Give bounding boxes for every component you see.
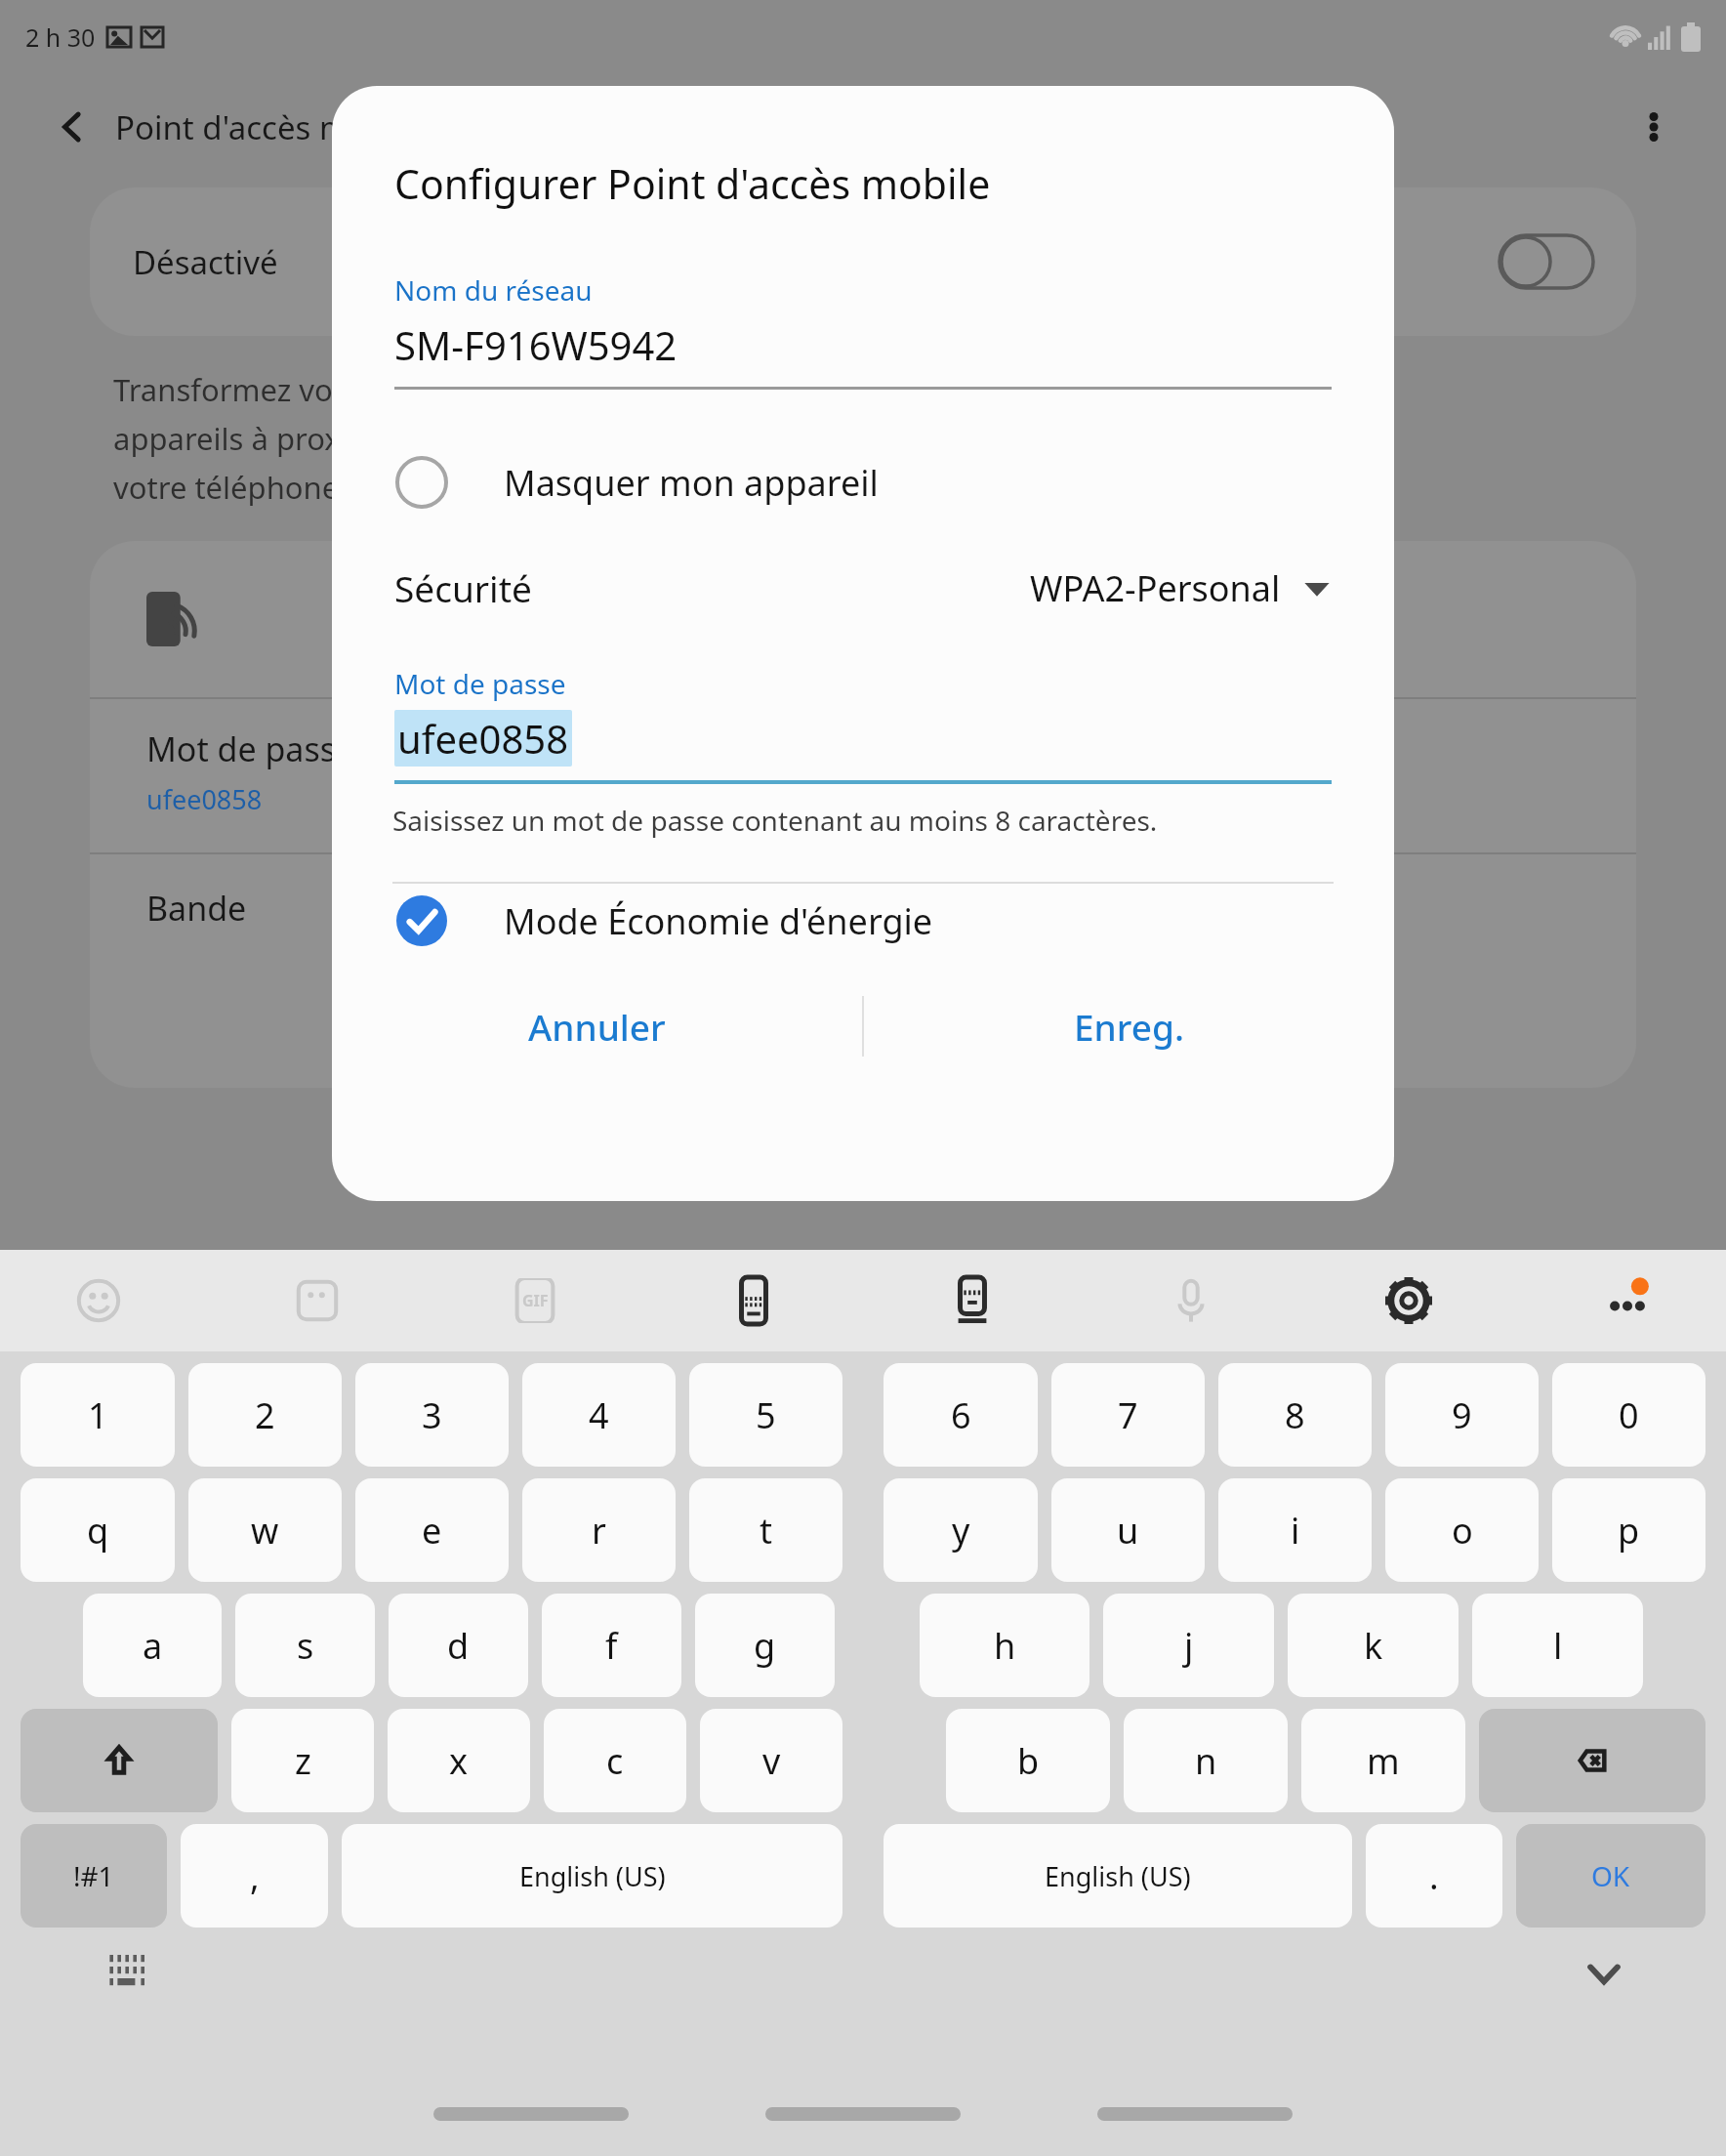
button[interactable]: Désactivé [90,187,1636,336]
button[interactable]: 7 [1051,1363,1205,1467]
button[interactable]: Mode Économie d'énergie [394,884,1332,958]
staticText: i [1291,1507,1300,1555]
button[interactable]: Annuler [332,979,862,1073]
staticText: Désactivé [133,240,278,284]
staticText: Mode Économie d'énergie [504,897,933,945]
button[interactable]: t [689,1478,842,1582]
button[interactable]: n [1124,1709,1288,1812]
button[interactable]: 1 [21,1363,175,1467]
button[interactable]: GIF [505,1270,565,1331]
button[interactable]: d [389,1594,528,1697]
staticText: . [1429,1852,1439,1900]
staticText: Configurer Point d'accès mobile [394,156,991,211]
button[interactable]: w [188,1478,342,1582]
staticText: Transformez votre téléphone en point d'a… [113,369,961,410]
button[interactable]: u [1051,1478,1205,1582]
button[interactable]: y [884,1478,1038,1582]
staticText: y [952,1507,970,1555]
button[interactable] [433,2107,629,2121]
button[interactable]: j [1103,1594,1274,1697]
button[interactable]: English (US) [342,1824,842,1928]
staticText: d [447,1622,470,1670]
staticText: p [1618,1507,1640,1555]
button[interactable]: k [1288,1594,1459,1697]
staticText: 1 [88,1391,108,1439]
staticText: v [762,1737,781,1785]
button[interactable]: f [542,1594,681,1697]
button[interactable]: v [700,1709,842,1812]
button[interactable]: c [544,1709,686,1812]
button[interactable] [1097,2107,1293,2121]
button[interactable]: 8 [1218,1363,1372,1467]
staticText: 7 [1118,1391,1138,1439]
button[interactable]: e [355,1478,509,1582]
button[interactable]: r [522,1478,676,1582]
button[interactable]: More options [1624,98,1683,156]
button[interactable]: !#1 [21,1824,167,1928]
button[interactable]: Nom du réseau [394,271,1332,390]
staticText: u [1117,1507,1139,1555]
staticText: o [1452,1507,1473,1555]
staticText: n [1195,1737,1217,1785]
staticText: s [297,1622,314,1670]
button[interactable]: b [946,1709,1110,1812]
staticText: z [295,1737,311,1785]
button[interactable]: m [1301,1709,1465,1812]
button[interactable]: g [695,1594,835,1697]
button[interactable]: Emoji [68,1270,129,1331]
button[interactable]: a [83,1594,222,1697]
button[interactable]: 9 [1385,1363,1539,1467]
staticText: Masquer mon appareil [504,459,879,507]
button[interactable]: Mot de passe [394,665,1332,784]
button[interactable]: Handwriting [723,1270,784,1331]
button[interactable]: Back [43,98,102,156]
button[interactable]: o [1385,1478,1539,1582]
staticText: h [994,1622,1016,1670]
staticText: w [251,1507,279,1555]
button[interactable]: p [1552,1478,1705,1582]
button[interactable]: 3 [355,1363,509,1467]
button[interactable]: Shift [21,1709,218,1812]
button[interactable]: OK [1516,1824,1705,1928]
button[interactable]: 5 [689,1363,842,1467]
staticText: t [760,1507,772,1555]
staticText: g [754,1622,776,1670]
staticText: 8 [1285,1391,1305,1439]
button[interactable]: English (US) [884,1824,1352,1928]
staticText: 2 h 30 [25,21,96,54]
button[interactable]: Voice input [1161,1270,1221,1331]
button[interactable]: x [388,1709,530,1812]
button[interactable]: s [235,1594,375,1697]
button[interactable]: 0 [1552,1363,1705,1467]
button[interactable]: Stickers [287,1270,348,1331]
staticText: b [1017,1737,1040,1785]
button[interactable]: Masquer mon appareil [394,446,1332,518]
button[interactable]: 4 [522,1363,676,1467]
button[interactable]: 2 [188,1363,342,1467]
staticText: f [605,1622,618,1670]
button[interactable]: Settings [1378,1270,1439,1331]
button[interactable]: , [181,1824,328,1928]
staticText: !#1 [73,1857,114,1894]
staticText: x [449,1737,469,1785]
button[interactable]: l [1472,1594,1643,1697]
button[interactable]: . [1366,1824,1502,1928]
staticText: OK [1591,1857,1630,1894]
button[interactable]: Enreg. [864,979,1394,1073]
button[interactable]: h [920,1594,1089,1697]
button[interactable]: i [1218,1478,1372,1582]
staticText: m [1367,1737,1400,1785]
button[interactable]: More [1597,1270,1658,1331]
button[interactable]: q [21,1478,175,1582]
staticText: r [592,1507,606,1555]
staticText: q [87,1507,109,1555]
button[interactable]: z [231,1709,374,1812]
button[interactable]: 6 [884,1363,1038,1467]
staticText: Mot de passe [146,726,355,771]
button[interactable]: Keyboard mode [942,1270,1003,1331]
button[interactable]: Sécurité [394,554,1332,622]
button[interactable]: Hide keyboard [1570,1939,1638,2008]
button[interactable]: Backspace [1479,1709,1705,1812]
staticText: e [422,1507,442,1555]
button[interactable] [765,2107,961,2121]
